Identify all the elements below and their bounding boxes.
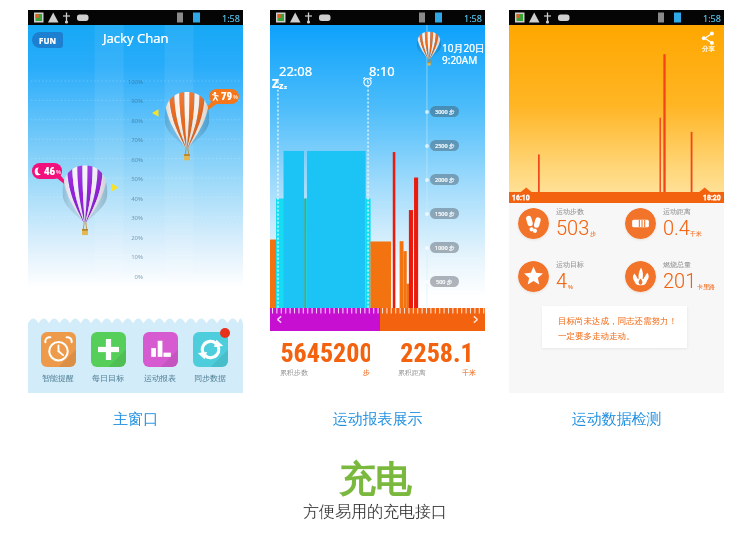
staticText: z bbox=[279, 79, 284, 91]
staticText: z bbox=[284, 83, 287, 91]
button[interactable]: 运动报表 bbox=[138, 332, 182, 383]
staticText: 目标尚未达成，同志还需努力！ bbox=[558, 316, 677, 327]
button[interactable]: 同步数据 bbox=[188, 332, 232, 383]
button[interactable]: 2258.1 bbox=[398, 338, 476, 377]
staticText: 9:20AM bbox=[442, 53, 478, 67]
staticText: 90% bbox=[117, 97, 143, 105]
button[interactable]: 燃烧总量 bbox=[625, 260, 725, 292]
button[interactable]: 运动距离 bbox=[625, 207, 725, 239]
staticText: 0% bbox=[117, 273, 143, 281]
staticText: 步 bbox=[363, 368, 370, 377]
staticText: 1:58 bbox=[464, 12, 482, 24]
staticText: 60% bbox=[117, 156, 143, 164]
staticText: 70% bbox=[117, 136, 143, 144]
button[interactable]: 分享 Share bbox=[701, 31, 715, 53]
staticText: 100% bbox=[117, 78, 143, 86]
staticText: 卡里路 bbox=[697, 283, 715, 291]
button[interactable]: 每日目标 bbox=[86, 332, 130, 383]
staticText: 1:58 bbox=[703, 12, 721, 24]
staticText: Z bbox=[272, 75, 279, 91]
staticText: 5645200 bbox=[280, 338, 370, 368]
button[interactable]: 运动目标 bbox=[518, 260, 618, 292]
staticText: 2000 步 bbox=[435, 176, 455, 184]
staticText: 累积距离 bbox=[398, 368, 426, 377]
button[interactable]: 46 bbox=[32, 163, 62, 179]
staticText: 1000 步 bbox=[435, 244, 455, 252]
staticText: 一定要多走动走动。 bbox=[558, 331, 635, 342]
staticText: 运动数据检测 bbox=[509, 410, 724, 429]
button[interactable]: Previous day bbox=[274, 314, 285, 325]
staticText: 22:08 bbox=[279, 62, 313, 80]
staticText: 2500 步 bbox=[435, 142, 455, 150]
staticText: 18:20 bbox=[703, 193, 721, 202]
staticText: 累积步数 bbox=[280, 368, 308, 377]
staticText: 运动步数 bbox=[556, 207, 584, 216]
staticText: 燃烧总量 bbox=[663, 260, 691, 269]
staticText: % bbox=[56, 168, 61, 176]
staticText: % bbox=[568, 283, 573, 291]
staticText: 46 bbox=[44, 165, 56, 178]
staticText: 30% bbox=[117, 214, 143, 222]
staticText: 运动报表展示 bbox=[270, 410, 485, 429]
staticText: 4 bbox=[556, 269, 568, 292]
button[interactable]: 运动步数 bbox=[518, 207, 618, 239]
staticText: 运动目标 bbox=[556, 260, 584, 269]
staticText: 1500 步 bbox=[435, 210, 455, 218]
staticText: 每日目标 bbox=[92, 373, 124, 383]
staticText: 20% bbox=[117, 234, 143, 242]
staticText: 充电 bbox=[0, 457, 750, 502]
staticText: 步 bbox=[590, 230, 596, 238]
staticText: 10月20日 bbox=[442, 41, 485, 55]
button[interactable]: 智能提醒 bbox=[36, 332, 80, 383]
staticText: 503 bbox=[556, 216, 590, 239]
button[interactable]: FUN logo bbox=[32, 32, 63, 48]
staticText: % bbox=[233, 93, 238, 101]
staticText: 运动距离 bbox=[663, 207, 691, 216]
staticText: 运动报表 bbox=[144, 373, 176, 383]
staticText: FUN bbox=[39, 35, 56, 46]
staticText: 千米 bbox=[690, 230, 702, 238]
staticText: Jacky Chan bbox=[103, 29, 169, 47]
staticText: 1:58 bbox=[222, 12, 240, 24]
staticText: 3000 步 bbox=[435, 108, 455, 116]
staticText: 主窗口 bbox=[28, 410, 243, 429]
staticText: 同步数据 bbox=[194, 373, 226, 383]
staticText: 50% bbox=[117, 175, 143, 183]
staticText: 千米 bbox=[462, 368, 476, 377]
staticText: 10% bbox=[117, 253, 143, 261]
staticText: 智能提醒 bbox=[42, 373, 74, 383]
staticText: 分享 bbox=[702, 45, 715, 53]
staticText: 500 步 bbox=[436, 278, 453, 286]
staticText: 79 bbox=[221, 90, 233, 103]
staticText: 8:10 bbox=[369, 62, 395, 80]
button[interactable]: 5645200 bbox=[280, 338, 370, 377]
staticText: 16:10 bbox=[512, 193, 530, 202]
button[interactable]: 79 bbox=[209, 89, 239, 104]
staticText: 201 bbox=[663, 269, 697, 292]
staticText: 方便易用的充电接口 bbox=[0, 502, 750, 522]
staticText: 40% bbox=[117, 195, 143, 203]
staticText: 80% bbox=[117, 117, 143, 125]
staticText: 0.4 bbox=[663, 216, 690, 239]
staticText: 2258.1 bbox=[398, 338, 476, 368]
button[interactable]: Next day bbox=[470, 314, 481, 325]
